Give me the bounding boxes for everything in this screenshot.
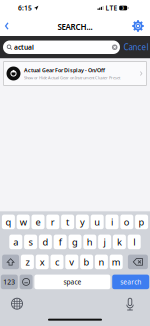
button[interactable]: u <box>91 215 104 229</box>
staticText: j <box>104 236 106 248</box>
button[interactable]: h <box>83 235 96 249</box>
button[interactable]: Settings <box>129 19 147 33</box>
button[interactable]: n <box>95 255 108 269</box>
button[interactable]: z <box>21 255 34 269</box>
button[interactable]: b <box>80 255 93 269</box>
staticText: n <box>98 256 104 268</box>
button[interactable]: w <box>17 215 30 229</box>
button[interactable]: Delete <box>128 255 148 269</box>
staticText: v <box>69 256 74 268</box>
staticText: l <box>133 236 135 248</box>
staticText: actual <box>14 43 34 52</box>
staticText: space <box>63 277 81 286</box>
button[interactable]: r <box>46 215 59 229</box>
staticText: k <box>117 236 122 248</box>
staticText: z <box>25 256 29 268</box>
button[interactable]: i <box>105 215 118 229</box>
button[interactable]: d <box>39 235 52 249</box>
staticText: Cancel <box>123 42 148 52</box>
staticText: Show or Hide Actual Gear on Instrument C… <box>24 75 120 80</box>
button[interactable]: j <box>98 235 111 249</box>
button[interactable]: Actual Gear For Display - On/Off <box>3 61 146 85</box>
staticText: d <box>42 236 48 248</box>
button[interactable]: s <box>24 235 37 249</box>
staticText: i <box>111 216 113 228</box>
staticText: s <box>29 236 33 248</box>
button[interactable]: k <box>113 235 126 249</box>
staticText: o <box>124 216 130 228</box>
button[interactable]: y <box>76 215 89 229</box>
button[interactable]: Clear text <box>112 44 117 50</box>
staticText: 123 <box>3 277 15 286</box>
staticText: x <box>40 256 45 268</box>
staticText: h <box>87 236 93 248</box>
staticText: p <box>139 216 145 228</box>
button[interactable]: 123 <box>1 275 18 289</box>
staticText: b <box>84 256 90 268</box>
button[interactable]: Cancel <box>120 38 148 56</box>
staticText: f <box>59 236 62 248</box>
staticText: u <box>94 216 100 228</box>
button[interactable]: q <box>2 215 15 229</box>
button[interactable]: m <box>110 255 123 269</box>
button[interactable]: e <box>31 215 44 229</box>
button[interactable]: Next keyboard <box>10 297 24 311</box>
button[interactable]: Emoji <box>20 275 33 289</box>
button[interactable]: f <box>54 235 67 249</box>
staticText: SEARCH... <box>57 22 92 32</box>
button[interactable]: c <box>50 255 63 269</box>
staticText: search <box>120 277 141 286</box>
button[interactable]: search <box>112 275 149 289</box>
button[interactable]: p <box>135 215 148 229</box>
staticText: t <box>66 216 69 228</box>
button[interactable]: Shift <box>2 255 19 269</box>
button[interactable]: Back <box>1 19 13 33</box>
staticText: Actual Gear For Display - On/Off <box>24 67 105 74</box>
button[interactable]: t <box>61 215 74 229</box>
staticText: LTE <box>105 4 117 12</box>
staticText: a <box>13 236 18 248</box>
button[interactable]: o <box>120 215 133 229</box>
button[interactable]: Dictate <box>123 297 137 311</box>
button[interactable]: x <box>36 255 49 269</box>
staticText: 6:15 <box>18 4 32 12</box>
button[interactable]: space <box>34 275 110 289</box>
staticText: y <box>80 216 85 228</box>
staticText: c <box>55 256 59 268</box>
staticText: w <box>20 216 27 228</box>
staticText: 3 <box>122 5 124 11</box>
staticText: r <box>51 216 55 228</box>
staticText: m <box>112 256 121 268</box>
button[interactable]: v <box>65 255 78 269</box>
staticText: g <box>72 236 78 248</box>
button[interactable]: l <box>128 235 141 249</box>
staticText: e <box>35 216 40 228</box>
button[interactable]: g <box>68 235 81 249</box>
staticText: q <box>5 216 11 228</box>
button[interactable]: a <box>9 235 22 249</box>
